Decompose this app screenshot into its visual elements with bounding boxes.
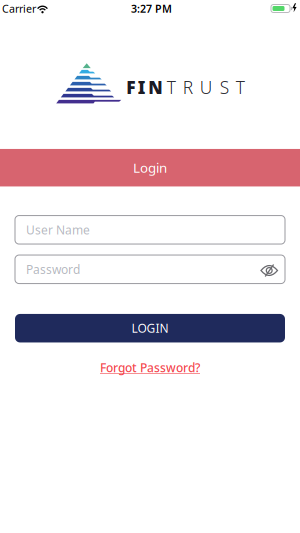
staticText: F xyxy=(126,76,135,99)
staticText: LOGIN xyxy=(131,320,168,336)
staticText: Forgot Password? xyxy=(100,359,200,375)
button[interactable]: Password xyxy=(15,255,285,284)
staticText: 3:27 PM xyxy=(131,2,172,16)
staticText: T xyxy=(236,76,245,99)
button[interactable]: Forgot Password? xyxy=(100,359,200,375)
button[interactable]: LOGIN xyxy=(15,314,285,342)
button[interactable]: Show Password xyxy=(260,264,279,276)
staticText: R xyxy=(183,76,193,99)
staticText: T xyxy=(167,76,176,99)
staticText: U xyxy=(200,76,213,99)
staticText: I xyxy=(138,76,146,99)
staticText: Login xyxy=(133,159,167,176)
button[interactable]: User Name xyxy=(15,216,285,244)
staticText: N xyxy=(148,76,162,99)
staticText: Carrier xyxy=(2,2,36,16)
staticText: User Name xyxy=(26,222,90,238)
staticText: Password xyxy=(26,261,80,277)
staticText: S xyxy=(220,76,229,99)
